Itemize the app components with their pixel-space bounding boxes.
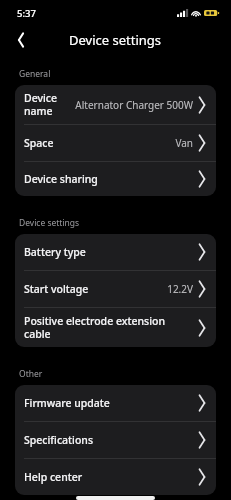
button[interactable]: Device sharing (15, 162, 216, 196)
button[interactable]: Start voltage (15, 271, 216, 307)
staticText: Device sharing (24, 172, 98, 186)
button[interactable]: Device name (15, 85, 216, 124)
staticText: General (19, 68, 51, 80)
button[interactable]: Firmware update (15, 385, 216, 421)
button[interactable]: Back (8, 27, 34, 53)
staticText: Start voltage (24, 282, 89, 296)
staticText: 12.2V (167, 282, 193, 296)
staticText: Space (24, 136, 54, 150)
button[interactable]: Positive electrode extension cable (15, 308, 216, 347)
staticText: Firmware update (24, 396, 110, 410)
button[interactable]: Specifications (15, 422, 216, 458)
staticText: Device name (24, 91, 71, 118)
staticText: 5:37 (17, 7, 36, 20)
button[interactable]: Battery type (15, 234, 216, 270)
staticText: Other (19, 368, 43, 380)
staticText: Device settings (19, 217, 80, 229)
staticText: Battery type (24, 245, 86, 259)
staticText: Help center (24, 470, 83, 484)
staticText: Device settings (69, 31, 162, 49)
staticText: Specifications (24, 433, 93, 447)
button[interactable]: Help center (15, 459, 216, 495)
staticText: Positive electrode extension cable (24, 314, 193, 341)
staticText: Alternator Charger 500W (75, 98, 193, 112)
button[interactable]: Space (15, 125, 216, 161)
staticText: Van (175, 136, 193, 150)
